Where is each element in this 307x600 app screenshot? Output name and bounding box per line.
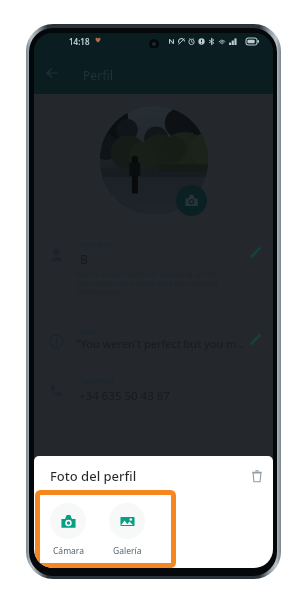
- staticText: 14:18: [69, 36, 90, 47]
- button[interactable]: Galería: [109, 503, 145, 557]
- staticText: Cámara: [53, 545, 84, 557]
- staticText: B: [80, 251, 88, 267]
- button[interactable]: Cámara: [50, 503, 86, 557]
- staticText: Galería: [113, 545, 142, 557]
- button[interactable]: Delete photo: [248, 467, 266, 485]
- button[interactable]: Change profile photo: [176, 185, 207, 216]
- staticText: Info: [80, 326, 97, 338]
- button[interactable]: Profile photo: [100, 106, 208, 214]
- staticText: Teléfono: [80, 375, 115, 387]
- staticText: "You weren't perfect but you ma…: [76, 336, 248, 351]
- button[interactable]: Back: [42, 63, 62, 83]
- staticText: Foto del perfil: [50, 467, 137, 485]
- staticText: Nombre: [80, 239, 113, 251]
- staticText: +34 635 50 43 87: [79, 388, 170, 404]
- staticText: Perfil: [83, 67, 114, 83]
